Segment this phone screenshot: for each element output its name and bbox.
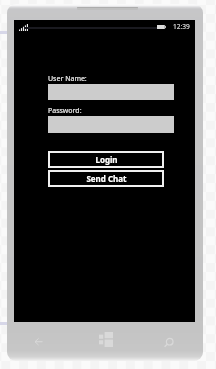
- button[interactable]: Login: [48, 151, 164, 168]
- staticText: Password:: [48, 106, 82, 116]
- button[interactable]: Home: [99, 332, 113, 347]
- button[interactable]: Back: [33, 336, 43, 347]
- staticText: User Name:: [48, 74, 87, 84]
- button[interactable]: Search: [163, 335, 176, 348]
- staticText: 12:39: [173, 22, 190, 31]
- staticText: Send Chat: [86, 173, 127, 184]
- button[interactable]: Send Chat: [48, 170, 164, 187]
- staticText: Login: [95, 154, 118, 165]
